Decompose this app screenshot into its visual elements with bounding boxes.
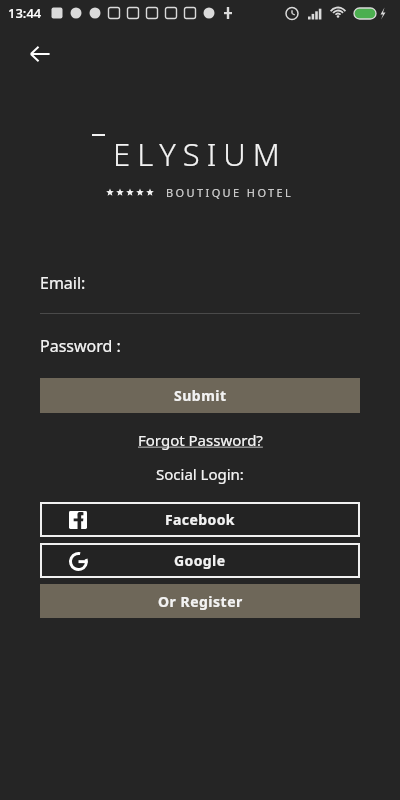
button[interactable]: Facebook — [42, 504, 358, 535]
staticText: Social Login: — [156, 464, 244, 484]
staticText: Google — [174, 551, 226, 570]
button[interactable]: Password : — [40, 335, 360, 357]
staticText: Or Register — [158, 592, 243, 611]
staticText: Forgot Password? — [138, 430, 263, 450]
button[interactable]: Or Register — [40, 584, 360, 618]
button[interactable]: Google — [42, 545, 358, 576]
staticText: 13:44 — [8, 4, 42, 22]
staticText: BOUTIQUE HOTEL — [166, 185, 294, 200]
staticText: ELYSIUM — [113, 133, 287, 175]
button[interactable]: Submit — [40, 378, 360, 413]
staticText: Facebook — [165, 510, 235, 529]
button[interactable]: Back — [16, 30, 64, 78]
button[interactable]: Forgot Password? — [134, 428, 267, 452]
staticText: Submit — [174, 386, 227, 405]
button[interactable]: Email: — [40, 272, 360, 294]
